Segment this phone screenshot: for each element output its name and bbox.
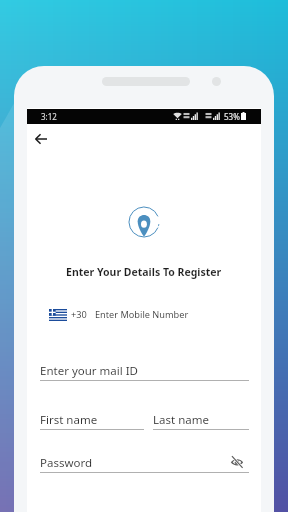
staticText: Enter Your Details To Register (66, 265, 222, 279)
staticText: Password (40, 455, 93, 471)
staticText: +30 (71, 308, 87, 321)
staticText: 53% (224, 111, 240, 122)
staticText: Enter Mobile Number (95, 308, 189, 321)
staticText: First name (40, 412, 98, 428)
staticText: 3:12 (41, 111, 57, 122)
button[interactable]: Back (28, 126, 54, 152)
button[interactable]: Show password (228, 453, 246, 471)
staticText: Last name (153, 412, 209, 428)
staticText: Enter your mail ID (40, 363, 138, 379)
